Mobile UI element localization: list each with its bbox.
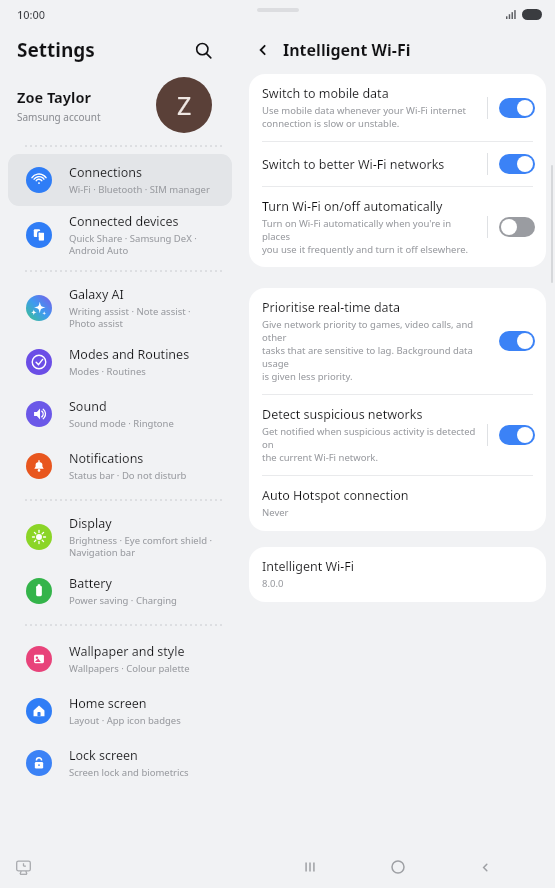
- button[interactable]: Wallpaper and style: [8, 633, 232, 685]
- staticText: Brightness · Eye comfort shield · Naviga…: [69, 534, 213, 559]
- staticText: Lock screen: [69, 747, 138, 764]
- button[interactable]: Switch to mobile data: [249, 74, 546, 141]
- staticText: Use mobile data whenever your Wi-Fi inte…: [262, 104, 466, 130]
- staticText: Notifications: [69, 450, 144, 467]
- staticText: Wallpapers · Colour palette: [69, 662, 190, 675]
- staticText: Prioritise real-time data: [262, 299, 401, 316]
- staticText: Battery: [69, 575, 112, 592]
- staticText: Modes and Routines: [69, 346, 190, 363]
- staticText: Wallpaper and style: [69, 643, 185, 660]
- staticText: Modes · Routines: [69, 365, 146, 378]
- staticText: Wi-Fi · Bluetooth · SIM manager: [69, 183, 210, 196]
- staticText: Intelligent Wi-Fi: [283, 39, 411, 61]
- button[interactable]: Recents: [293, 850, 327, 884]
- staticText: 8.0.0: [262, 577, 284, 590]
- staticText: Display: [69, 515, 112, 532]
- staticText: Intelligent Wi-Fi: [262, 558, 355, 575]
- button[interactable]: Notifications: [8, 440, 232, 492]
- button[interactable]: Galaxy AI: [8, 279, 232, 336]
- button[interactable]: Modes and Routines: [8, 336, 232, 388]
- staticText: Turn on Wi-Fi automatically when you're …: [262, 217, 479, 256]
- button[interactable]: Screen capture: [12, 856, 34, 878]
- button[interactable]: Sound: [8, 388, 232, 440]
- button[interactable]: Intelligent Wi-Fi: [249, 547, 546, 602]
- staticText: 10:00: [17, 7, 46, 22]
- button[interactable]: Display: [8, 508, 232, 565]
- staticText: Power saving · Charging: [69, 594, 177, 607]
- staticText: Z: [177, 88, 192, 122]
- staticText: Quick Share · Samsung DeX · Android Auto: [69, 232, 197, 257]
- staticText: Turn Wi-Fi on/off automatically: [262, 198, 443, 215]
- button[interactable]: On: [499, 98, 535, 118]
- staticText: Zoe Taylor: [17, 87, 91, 107]
- button[interactable]: Zoe Taylor: [0, 72, 240, 138]
- button[interactable]: Home: [381, 850, 415, 884]
- staticText: Home screen: [69, 695, 147, 712]
- button[interactable]: On: [499, 331, 535, 351]
- staticText: Detect suspicious networks: [262, 406, 423, 423]
- staticText: Screen lock and biometrics: [69, 766, 189, 779]
- button[interactable]: Turn Wi-Fi on/off automatically: [249, 187, 546, 267]
- staticText: Connections: [69, 164, 142, 181]
- button[interactable]: Auto Hotspot connection: [249, 476, 546, 531]
- button[interactable]: Back: [468, 850, 502, 884]
- staticText: Writing assist · Note assist · Photo ass…: [69, 305, 191, 330]
- staticText: Connected devices: [69, 213, 179, 230]
- staticText: Sound mode · Ringtone: [69, 417, 174, 430]
- button[interactable]: Prioritise real-time data: [249, 288, 546, 394]
- button[interactable]: Battery: [8, 565, 232, 617]
- staticText: Never: [262, 506, 289, 519]
- staticText: Switch to mobile data: [262, 85, 389, 102]
- staticText: Give network priority to games, video ca…: [262, 318, 479, 383]
- button[interactable]: Lock screen: [8, 737, 232, 789]
- button[interactable]: On: [499, 154, 535, 174]
- staticText: Galaxy AI: [69, 286, 124, 303]
- button[interactable]: Detect suspicious networks: [249, 395, 546, 475]
- button[interactable]: On: [499, 425, 535, 445]
- staticText: Samsung account: [17, 110, 101, 124]
- staticText: Layout · App icon badges: [69, 714, 181, 727]
- button[interactable]: Home screen: [8, 685, 232, 737]
- staticText: Get notified when suspicious activity is…: [262, 425, 479, 464]
- button[interactable]: Off: [499, 217, 535, 237]
- button[interactable]: Back: [250, 37, 276, 63]
- staticText: Settings: [17, 37, 95, 63]
- staticText: Auto Hotspot connection: [262, 487, 409, 504]
- staticText: Sound: [69, 398, 107, 415]
- button[interactable]: Connected devices: [8, 206, 232, 263]
- staticText: Status bar · Do not disturb: [69, 469, 187, 482]
- button[interactable]: Connections: [8, 154, 232, 206]
- staticText: Switch to better Wi-Fi networks: [262, 156, 445, 173]
- button[interactable]: Search: [188, 35, 218, 65]
- button[interactable]: Switch to better Wi-Fi networks: [249, 142, 546, 186]
